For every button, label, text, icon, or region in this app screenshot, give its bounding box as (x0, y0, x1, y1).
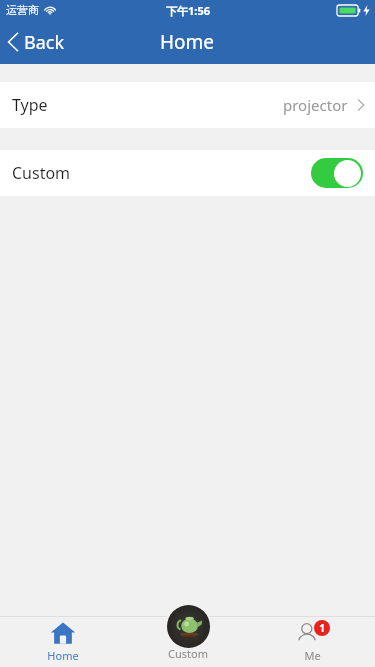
staticText: Back (24, 30, 65, 55)
staticText: Home (47, 648, 79, 663)
button[interactable]: Custom profile (165, 603, 211, 649)
staticText: 运营商 (6, 3, 39, 17)
staticText: 下午1:56 (166, 3, 210, 18)
button[interactable]: Type (0, 82, 375, 128)
staticText: Home (160, 29, 215, 55)
button[interactable]: 1 (250, 616, 375, 667)
staticText: projector (283, 95, 348, 115)
button[interactable]: Home (0, 616, 125, 667)
staticText: Custom (168, 646, 208, 661)
staticText: 1 (319, 621, 325, 635)
staticText: Type (12, 94, 48, 116)
button[interactable]: Custom toggle, on (311, 158, 363, 188)
staticText: Me (304, 648, 321, 663)
staticText: Custom (12, 162, 71, 184)
button[interactable]: Custom (125, 616, 250, 667)
button[interactable]: Back (0, 20, 75, 64)
